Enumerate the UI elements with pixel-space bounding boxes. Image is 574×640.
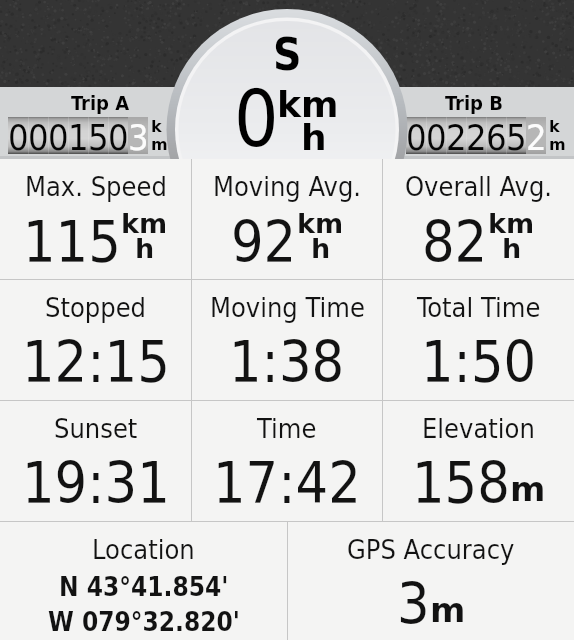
staticText: S [273, 29, 302, 80]
button[interactable]: Location [0, 522, 287, 640]
staticText: GPS Accuracy [347, 534, 515, 565]
staticText: Sunset [54, 413, 138, 444]
staticText: 12:15 [22, 329, 170, 395]
staticText: h [502, 233, 522, 264]
staticText: Overall Avg. [405, 171, 553, 202]
staticText: 3 [397, 571, 430, 637]
staticText: m [430, 590, 466, 630]
button[interactable]: Moving Avg. [192, 159, 382, 279]
staticText: 82 [422, 209, 488, 275]
staticText: 0 [108, 117, 128, 154]
button[interactable]: Stopped [0, 280, 191, 400]
staticText: Moving Avg. [213, 171, 362, 202]
staticText: Trip B [445, 91, 503, 114]
staticText: 2 [446, 117, 466, 154]
staticText: 0 [426, 117, 446, 154]
staticText: m [549, 135, 566, 153]
staticText: Trip A [71, 91, 130, 114]
button[interactable]: Max. Speed [0, 159, 191, 279]
staticText: 1:38 [229, 329, 345, 395]
staticText: km [297, 208, 344, 239]
staticText: km [488, 208, 535, 239]
staticText: Elevation [422, 413, 535, 444]
staticText: m [151, 135, 168, 153]
button[interactable]: Sunset [0, 401, 191, 521]
staticText: 6 [486, 117, 506, 154]
staticText: Max. Speed [25, 171, 167, 202]
staticText: Moving Time [210, 292, 365, 323]
staticText: W 079°32.820' [48, 607, 240, 637]
staticText: 5 [506, 117, 526, 154]
button[interactable]: Elevation [383, 401, 574, 521]
staticText: h [311, 233, 331, 264]
button[interactable]: GPS Accuracy [288, 522, 574, 640]
staticText: 115 [23, 209, 121, 275]
staticText: k [549, 117, 560, 136]
staticText: N 43°41.854' [59, 572, 229, 602]
staticText: 1 [68, 117, 88, 154]
staticText: 92 [231, 209, 297, 275]
staticText: 3 [128, 117, 148, 154]
staticText: Time [257, 413, 317, 444]
staticText: 0 [48, 117, 68, 154]
staticText: 2 [526, 117, 546, 154]
staticText: 1:50 [421, 329, 537, 395]
button[interactable]: Trip B [399, 87, 574, 156]
button[interactable]: Time [192, 401, 382, 521]
staticText: km [277, 84, 339, 126]
staticText: 5 [88, 117, 108, 154]
staticText: 0 [8, 117, 28, 154]
staticText: 0 [406, 117, 426, 154]
staticText: 17:42 [213, 450, 361, 516]
staticText: h [135, 233, 155, 264]
staticText: 0 [28, 117, 48, 154]
button[interactable]: Overall Avg. [383, 159, 574, 279]
staticText: k [151, 117, 162, 136]
button[interactable]: Moving Time [192, 280, 382, 400]
staticText: 19:31 [22, 450, 170, 516]
button[interactable]: Total Time [383, 280, 574, 400]
staticText: 0 [234, 74, 279, 165]
staticText: km [121, 208, 168, 239]
staticText: Stopped [45, 292, 147, 323]
staticText: Location [92, 534, 195, 565]
staticText: m [510, 469, 546, 509]
staticText: 2 [466, 117, 486, 154]
staticText: h [301, 117, 327, 159]
staticText: 158 [412, 450, 510, 516]
staticText: Total Time [417, 292, 541, 323]
button[interactable]: Trip A [0, 87, 175, 156]
